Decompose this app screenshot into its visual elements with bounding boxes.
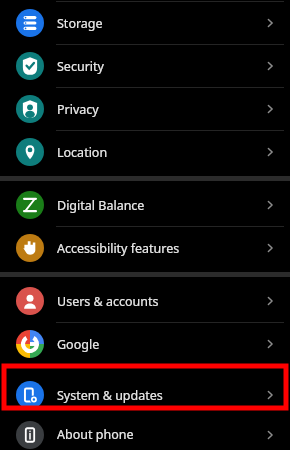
staticText: About phone bbox=[57, 426, 134, 443]
staticText: Accessibility features bbox=[57, 240, 180, 257]
staticText: Digital Balance bbox=[57, 197, 145, 214]
button[interactable]: Accessibility features bbox=[0, 227, 290, 269]
staticText: Privacy bbox=[57, 101, 99, 118]
staticText: Security bbox=[57, 58, 104, 75]
staticText: Location bbox=[57, 144, 108, 161]
button[interactable]: Users & accounts bbox=[0, 280, 290, 322]
staticText: Google bbox=[57, 336, 100, 353]
staticText: Storage bbox=[57, 15, 103, 32]
button[interactable]: Privacy bbox=[0, 88, 290, 130]
button[interactable]: Storage bbox=[0, 2, 290, 44]
staticText: Users & accounts bbox=[57, 293, 159, 310]
button[interactable]: Google bbox=[0, 323, 290, 365]
staticText: System & updates bbox=[57, 387, 163, 404]
button[interactable]: System & updates bbox=[0, 374, 290, 416]
button[interactable]: Location bbox=[0, 131, 290, 173]
button[interactable]: Digital Balance bbox=[0, 184, 290, 226]
button[interactable]: Security bbox=[0, 45, 290, 87]
button[interactable]: About phone bbox=[0, 419, 290, 450]
